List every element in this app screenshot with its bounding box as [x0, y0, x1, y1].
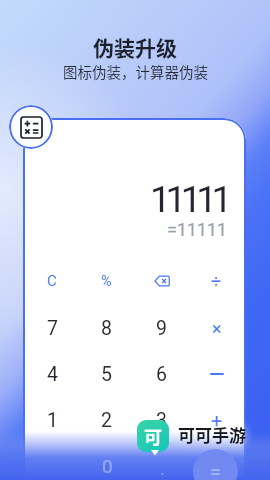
button[interactable]: 7	[25, 305, 79, 351]
staticText: 0	[102, 455, 113, 477]
button[interactable]: 1	[25, 397, 79, 443]
staticText: C	[47, 272, 57, 290]
staticText: %	[101, 273, 112, 290]
button[interactable]: +	[189, 397, 244, 443]
staticText: 8	[101, 317, 112, 340]
staticText: =	[210, 460, 221, 480]
staticText: 1	[47, 409, 58, 432]
staticText: 可可手游	[178, 422, 246, 447]
staticText: ÷	[211, 271, 222, 292]
button[interactable]: C	[25, 258, 79, 304]
button[interactable]: ×	[189, 305, 244, 351]
staticText: +	[211, 409, 223, 432]
staticText: 4	[47, 363, 58, 386]
staticText: 9	[156, 317, 167, 340]
staticText: 7	[47, 317, 58, 340]
staticText: 11111	[150, 178, 227, 220]
staticText: 3	[156, 409, 167, 432]
staticText: 伪装升级	[93, 32, 177, 62]
button[interactable]: ÷	[189, 258, 244, 304]
staticText: ×	[212, 318, 222, 339]
button[interactable]: 可	[137, 420, 169, 452]
button[interactable]: 8	[79, 305, 134, 351]
button[interactable]: 2	[79, 397, 134, 443]
staticText: 2	[101, 409, 112, 432]
staticText: .	[160, 457, 166, 479]
button[interactable]: =	[193, 449, 238, 480]
button[interactable]	[9, 105, 53, 149]
staticText: 6	[156, 363, 167, 386]
staticText: 5	[101, 363, 112, 386]
button[interactable]: 6	[134, 351, 189, 397]
staticText: =11111	[167, 219, 227, 241]
button[interactable]	[189, 351, 244, 397]
button[interactable]: %	[79, 258, 134, 304]
button[interactable]: 可可手游	[172, 421, 252, 448]
button[interactable]: 4	[25, 351, 79, 397]
button[interactable]: 5	[79, 351, 134, 397]
button[interactable]: 9	[134, 305, 189, 351]
button[interactable]	[134, 258, 189, 304]
staticText: 图标伪装，计算器伪装	[63, 61, 208, 82]
staticText: 可	[144, 423, 162, 449]
button[interactable]: 3	[134, 397, 189, 443]
